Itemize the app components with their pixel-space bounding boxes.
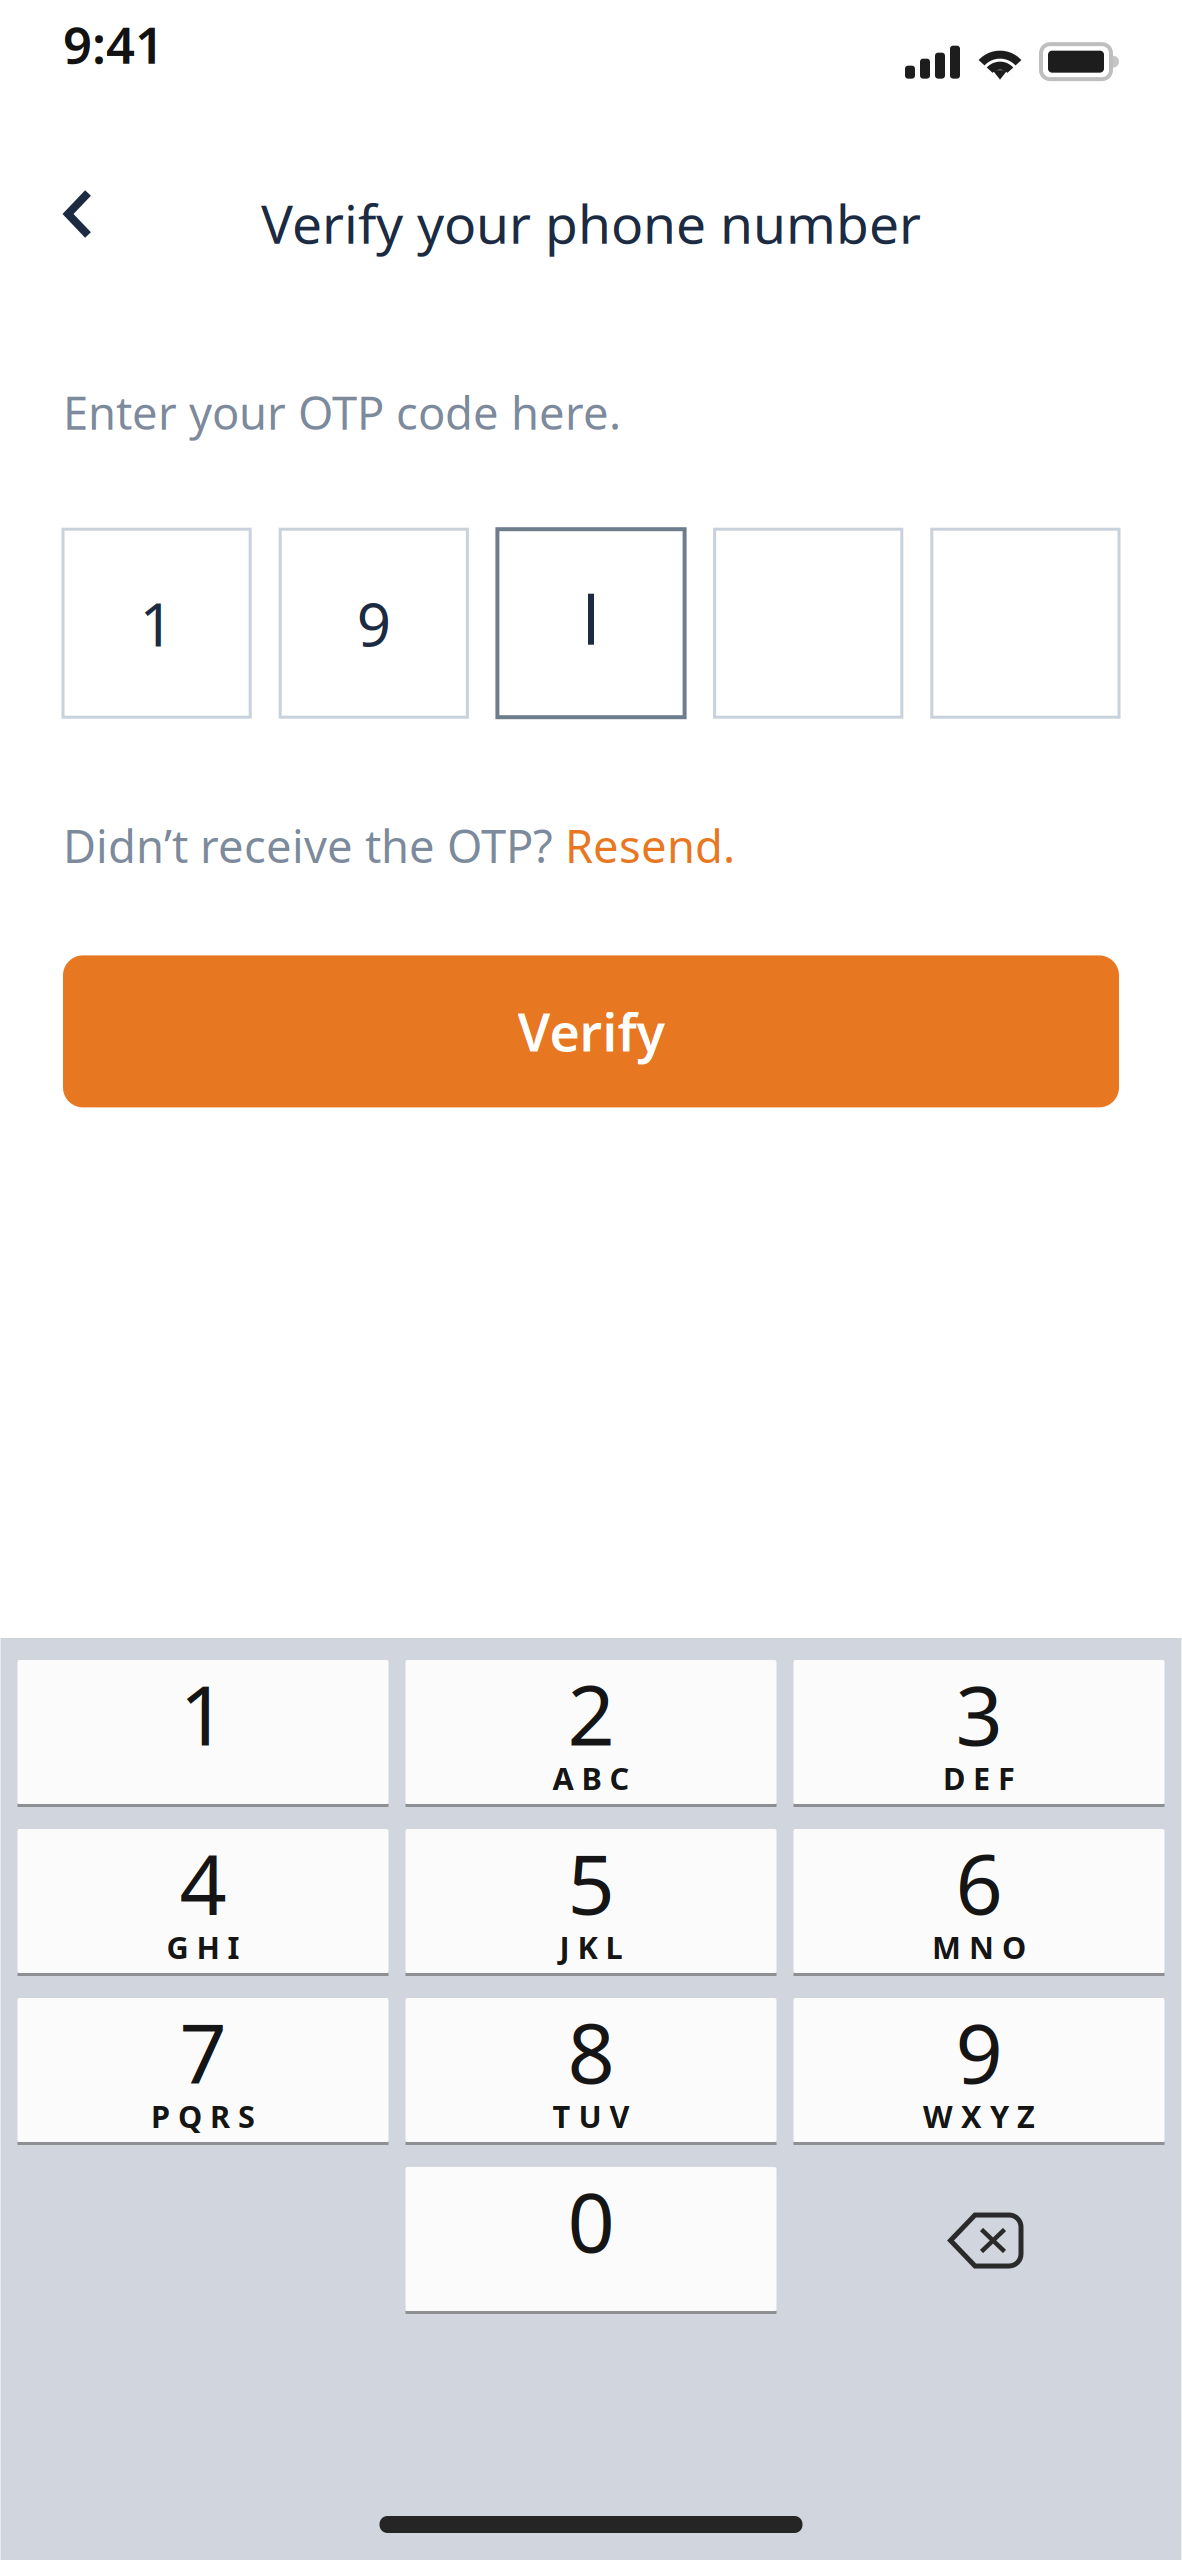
button[interactable]: 4 [17,1829,388,1976]
staticText: 1 [179,1659,226,1768]
staticText: T U V [552,2096,629,2136]
button[interactable]: 1 [17,1660,388,1807]
button[interactable]: 3 [793,1660,1164,1807]
staticText: 8 [567,1997,614,2106]
button[interactable]: Resend. [565,815,735,875]
staticText: Verify your phone number [261,188,921,258]
staticText: 5 [567,1828,614,1937]
staticText: 9 [955,1997,1002,2106]
staticText: 9 [357,583,391,663]
staticText: 0 [567,2166,614,2275]
button[interactable]: 5 [405,1829,776,1976]
staticText: D E F [943,1758,1015,1798]
button[interactable]: 8 [405,1998,776,2145]
staticText: 3 [955,1659,1002,1768]
staticText: W X Y Z [923,2096,1035,2136]
staticText: 7 [179,1997,226,2106]
button[interactable]: Verify [63,955,1119,1107]
staticText: 2 [567,1659,614,1768]
button[interactable]: 7 [17,1998,388,2145]
staticText: Didn’t receive the OTP? [63,815,565,875]
staticText: J K L [559,1927,622,1967]
staticText: Resend. [565,815,735,875]
button[interactable]: Back [30,144,126,284]
button[interactable]: 0 [405,2167,776,2314]
button[interactable]: OTP digit 2 [280,529,467,717]
staticText: Verify [517,997,664,1066]
button[interactable]: 9 [793,1998,1164,2145]
staticText: 1 [140,583,174,663]
staticText: G H I [166,1927,239,1967]
button[interactable]: OTP digit 1 [63,529,250,717]
staticText: A B C [552,1758,629,1798]
staticText: Enter your OTP code here. [63,382,621,442]
button[interactable]: Delete [793,2167,1164,2314]
staticText: 6 [955,1828,1002,1937]
button[interactable]: OTP digit 5 [932,529,1119,717]
button[interactable]: OTP digit 4 [715,529,902,717]
button[interactable]: 2 [405,1660,776,1807]
staticText: P Q R S [151,2096,255,2136]
staticText: 4 [179,1828,226,1937]
staticText: 9:41 [63,10,164,78]
button[interactable]: 6 [793,1829,1164,1976]
button[interactable]: OTP digit 3 [497,529,685,717]
staticText: M N O [932,1927,1026,1967]
